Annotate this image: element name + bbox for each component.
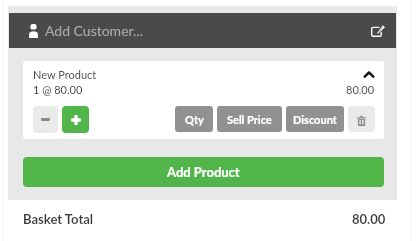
button[interactable]: Increase quantity (62, 106, 89, 133)
button[interactable]: Add Product (23, 157, 384, 187)
staticText: New Product (33, 68, 97, 81)
button[interactable]: Collapse item (357, 65, 381, 83)
button[interactable]: Qty (175, 106, 213, 132)
staticText: 80.00 (346, 83, 375, 96)
button[interactable]: Remove item (348, 106, 375, 132)
button[interactable]: Decrease quantity (33, 106, 58, 133)
staticText: Add Product (167, 164, 240, 180)
button[interactable]: Add Customer... (9, 13, 361, 48)
staticText: Sell Price (227, 113, 272, 126)
staticText: Basket Total (23, 211, 94, 227)
staticText: 80.00 (352, 211, 386, 227)
button[interactable]: Edit customer (361, 13, 396, 48)
button[interactable]: Sell Price (217, 106, 282, 132)
button[interactable]: Discount (286, 106, 344, 132)
staticText: 1 @ 80.00 (33, 83, 83, 96)
staticText: Discount (293, 113, 337, 126)
staticText: Qty (185, 113, 204, 126)
staticText: Add Customer... (45, 22, 143, 39)
